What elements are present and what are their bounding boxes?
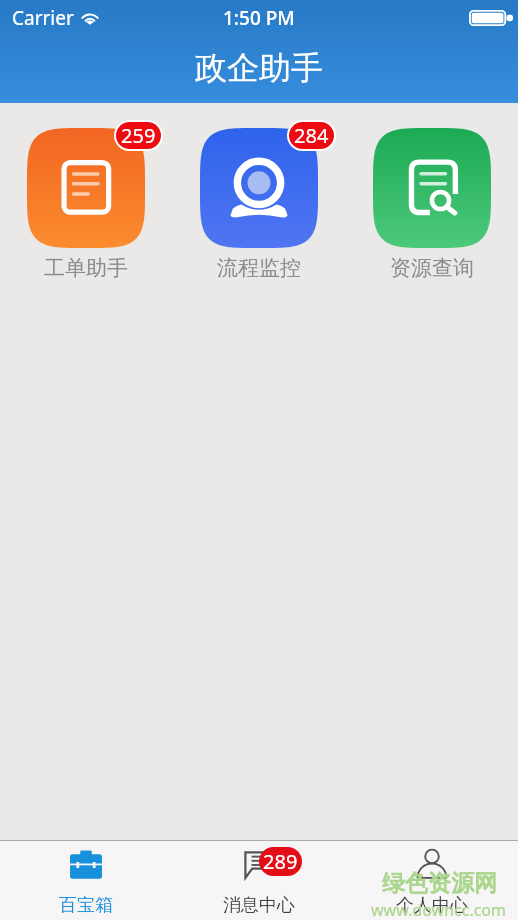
staticText: 绿色资源网 bbox=[382, 869, 497, 898]
staticText: 1:50 PM bbox=[223, 5, 295, 31]
button[interactable]: 百宝箱 bbox=[0, 841, 172, 920]
staticText: 259 bbox=[121, 122, 156, 149]
staticText: 289 bbox=[263, 848, 298, 875]
button[interactable]: 个人中心 bbox=[345, 841, 518, 920]
staticText: 消息中心 bbox=[223, 894, 295, 917]
button[interactable]: 资源查询 bbox=[345, 128, 518, 281]
button[interactable]: 259 bbox=[0, 128, 172, 281]
staticText: 284 bbox=[294, 122, 329, 149]
staticText: Carrier bbox=[12, 5, 74, 31]
staticText: 流程监控 bbox=[217, 255, 301, 281]
button[interactable]: 289 bbox=[172, 841, 345, 920]
staticText: 工单助手 bbox=[44, 255, 128, 281]
staticText: 政企助手 bbox=[195, 48, 323, 88]
staticText: 资源查询 bbox=[390, 255, 474, 281]
staticText: 个人中心 bbox=[396, 894, 468, 917]
staticText: www.downcc.com bbox=[371, 899, 507, 920]
button[interactable]: 284 bbox=[172, 128, 345, 281]
staticText: 百宝箱 bbox=[59, 894, 113, 917]
